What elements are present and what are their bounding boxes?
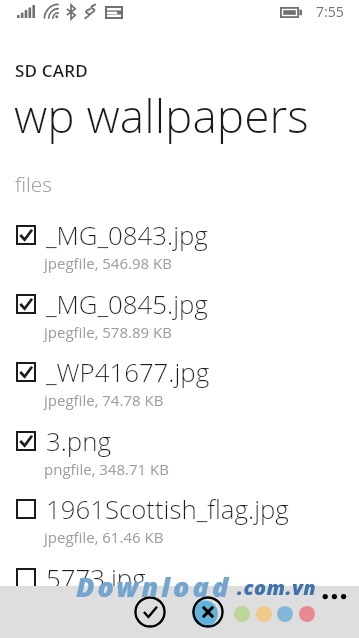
staticText: jpegfile, 546.98 KB bbox=[44, 253, 172, 273]
button[interactable] bbox=[0, 215, 359, 277]
staticText: 7:55 bbox=[316, 2, 344, 21]
button[interactable]: More options bbox=[318, 590, 346, 603]
button[interactable] bbox=[0, 284, 359, 346]
button[interactable] bbox=[256, 606, 272, 622]
staticText: SD CARD bbox=[15, 59, 88, 82]
staticText: _MG_0843.jpg bbox=[46, 217, 208, 252]
staticText: jpegfile, 578.89 KB bbox=[44, 322, 172, 342]
button[interactable] bbox=[0, 489, 359, 551]
button[interactable] bbox=[0, 558, 359, 620]
staticText: jpegfile, 74.78 KB bbox=[44, 390, 164, 410]
staticText: files bbox=[15, 170, 53, 199]
button[interactable] bbox=[277, 606, 293, 622]
staticText: .com.vn bbox=[237, 574, 317, 601]
staticText: 5773.jpg bbox=[46, 560, 146, 595]
staticText: jpegfile, 61.46 KB bbox=[44, 527, 164, 547]
staticText: _MG_0845.jpg bbox=[46, 286, 208, 321]
staticText: wp wallpapers bbox=[14, 84, 309, 147]
staticText: _WP41677.jpg bbox=[46, 354, 210, 389]
staticText: Download bbox=[76, 568, 232, 605]
button[interactable] bbox=[234, 606, 250, 622]
staticText: 1961Scottish_flag.jpg bbox=[46, 491, 289, 526]
button[interactable]: Accept bbox=[134, 596, 166, 628]
staticText: jpegfile, 110.30 KB bbox=[44, 596, 172, 616]
staticText: 3.png bbox=[46, 423, 111, 458]
button[interactable] bbox=[0, 352, 359, 414]
button[interactable]: Cancel bbox=[192, 596, 224, 628]
button[interactable] bbox=[0, 421, 359, 483]
button[interactable] bbox=[299, 606, 315, 622]
staticText: pngfile, 348.71 KB bbox=[44, 459, 169, 479]
